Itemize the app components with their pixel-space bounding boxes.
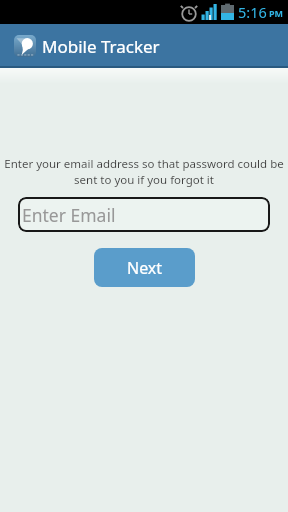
- staticText: Enter your email address so that passwor…: [0, 156, 288, 187]
- staticText: Next: [127, 257, 163, 279]
- staticText: Enter Email: [22, 203, 116, 227]
- staticText: Mobile Tracker: [42, 35, 160, 58]
- staticText: 5:16: [238, 2, 267, 22]
- button[interactable]: Enter Email: [18, 197, 270, 232]
- button[interactable]: Next: [94, 248, 195, 287]
- staticText: PM: [269, 7, 284, 19]
